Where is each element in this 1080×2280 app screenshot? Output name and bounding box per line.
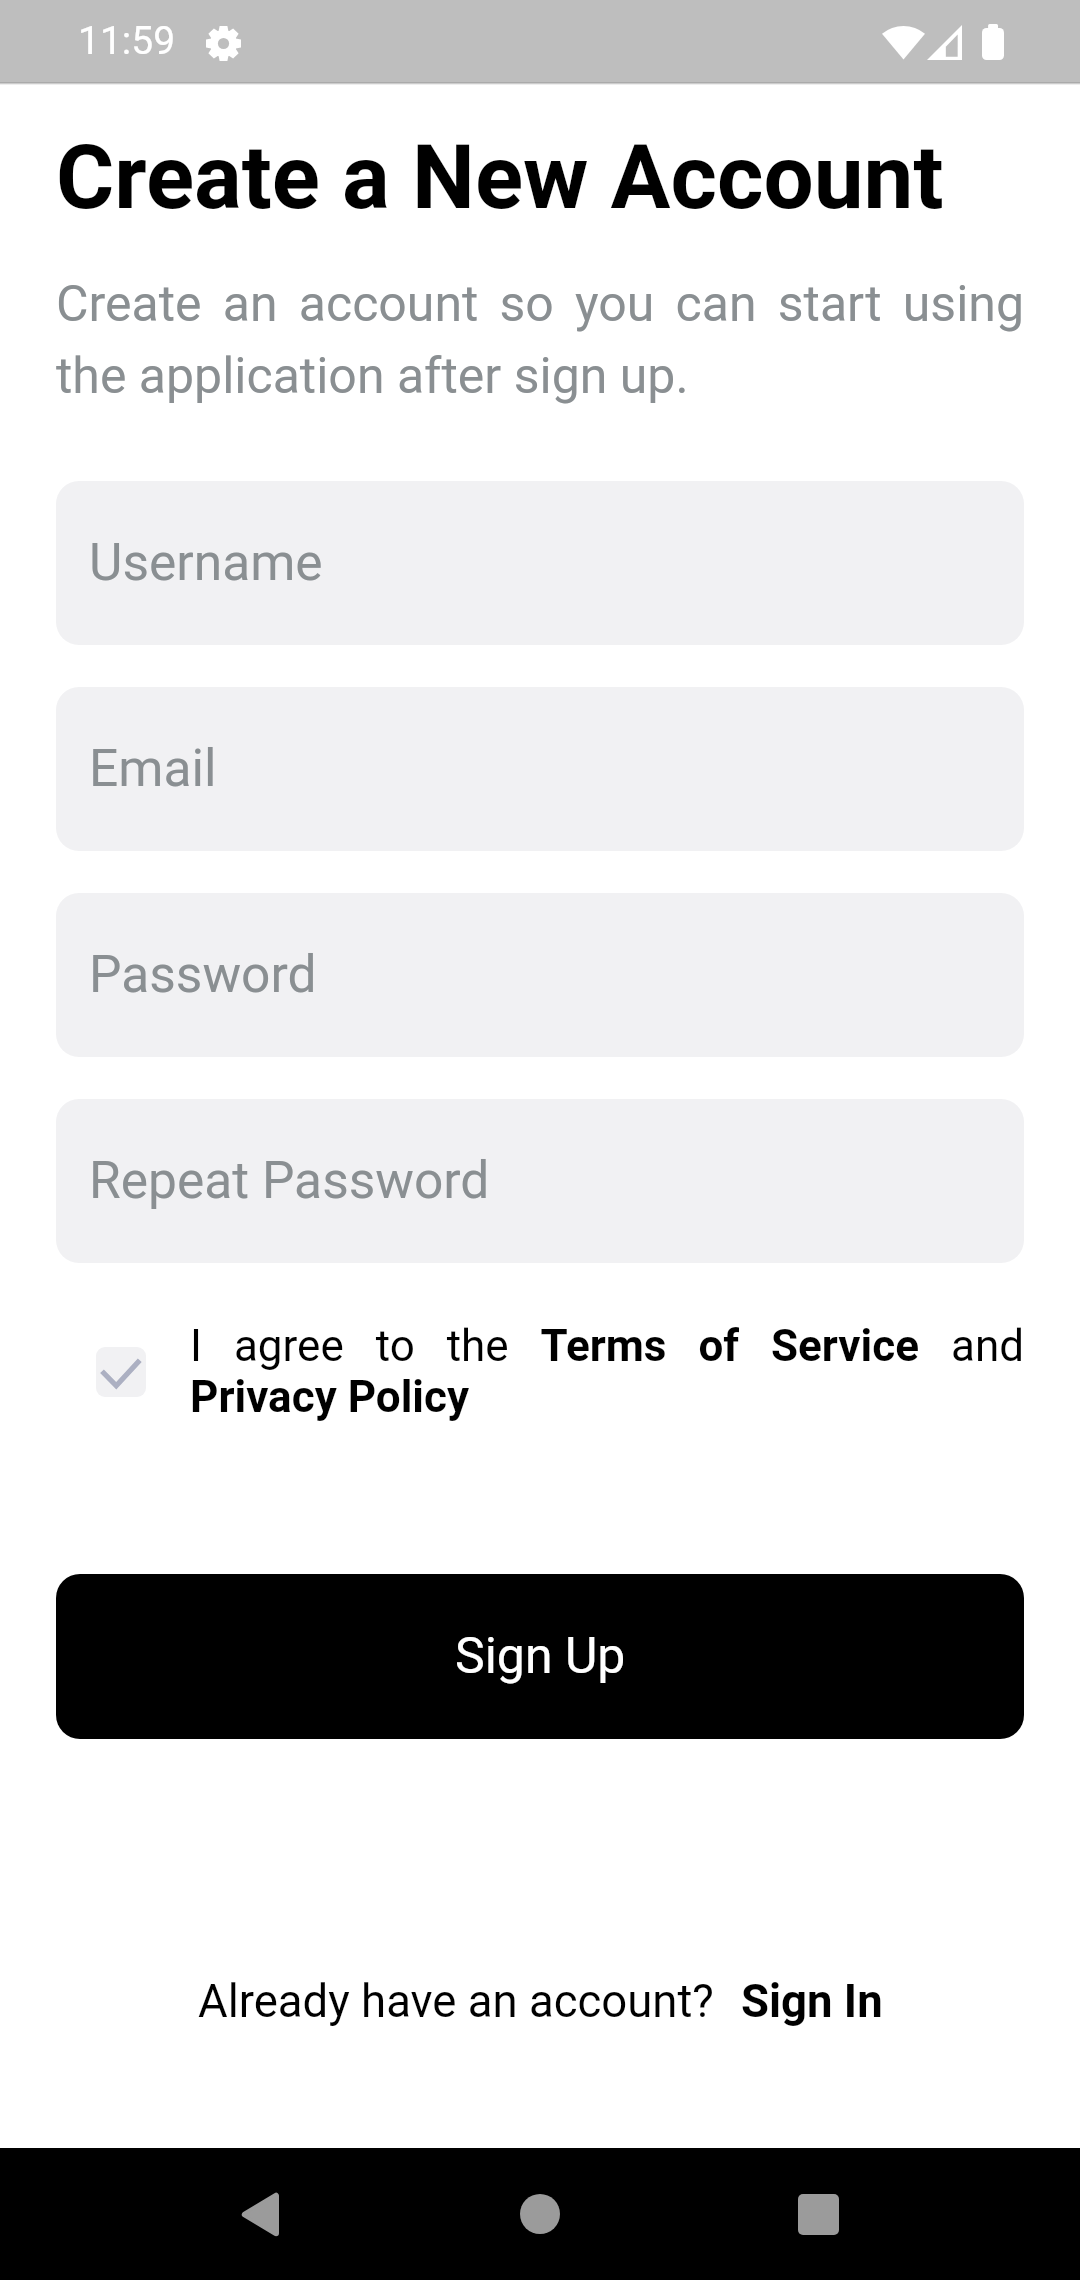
- button[interactable]: Repeat Password: [56, 1099, 1024, 1263]
- button[interactable]: Email: [56, 687, 1024, 851]
- button[interactable]: I agree to the Terms of Service and Priv…: [190, 1321, 1024, 1423]
- button[interactable]: Back: [180, 2148, 338, 2280]
- staticText: Password: [89, 946, 317, 1004]
- staticText: Username: [89, 534, 323, 592]
- button[interactable]: Sign In: [741, 1976, 883, 2028]
- button[interactable]: Recent apps: [739, 2148, 897, 2280]
- staticText: Sign Up: [455, 1629, 626, 1685]
- staticText: Create a New Account: [56, 126, 944, 230]
- staticText: Already have an account?: [198, 1976, 714, 2028]
- button[interactable]: Sign Up: [56, 1574, 1024, 1739]
- staticText: 11:59: [78, 22, 176, 63]
- staticText: Repeat Password: [89, 1152, 490, 1210]
- staticText: Create an account so you can start using…: [56, 264, 1024, 408]
- button[interactable]: Home: [461, 2148, 619, 2280]
- button[interactable]: I agree to the Terms of Service: [96, 1347, 146, 1397]
- button[interactable]: Username: [56, 481, 1024, 645]
- button[interactable]: Password: [56, 893, 1024, 1057]
- staticText: Email: [89, 740, 217, 798]
